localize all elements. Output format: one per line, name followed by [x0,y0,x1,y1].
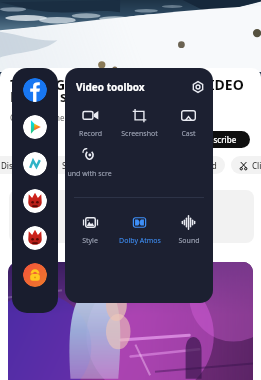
staticText: Clip [252,160,261,171]
button[interactable]: Finance [23,152,47,176]
button[interactable]: Game 2 [23,226,47,250]
staticText: THE BIG Mountain cimbing VIDEO Day 2 - s… [10,75,244,107]
staticText: Screenshot [121,129,158,139]
button[interactable]: Play Store [23,115,47,139]
staticText: Record [79,129,102,139]
button[interactable]: Cast [164,105,213,141]
button[interactable]: Download [157,156,225,174]
button[interactable] [9,190,254,243]
button[interactable]: App lock [23,263,47,287]
staticText: Share [62,160,84,171]
staticText: Video toolbox [76,80,145,94]
button[interactable]: Sound [164,212,213,248]
button[interactable]: und with scre [65,145,115,181]
button[interactable]: Screenshot [115,105,164,141]
staticText: Channel name · 1.2M views [10,112,117,123]
button[interactable]: Remix [98,156,151,174]
staticText: und with scre [67,169,112,179]
button[interactable]: Dolby Atmos [115,212,164,248]
button[interactable]: Clip [231,156,261,174]
button[interactable]: Settings [189,78,206,95]
button[interactable]: Share [41,156,92,174]
staticText: Download [178,160,217,171]
button[interactable]: Game [23,189,47,213]
staticText: Cast [181,129,196,139]
button[interactable]: Subscribe [186,131,250,148]
button[interactable]: Facebook [23,78,47,102]
staticText: Dislike [1,160,27,171]
button[interactable]: Style [65,212,115,248]
staticText: Style [82,236,98,246]
button[interactable]: Record [65,105,115,141]
staticText: Subscribe [199,134,237,145]
staticText: Dolby Atmos [119,236,161,246]
staticText: Sound [178,236,200,246]
button[interactable]: Dislike [0,156,35,174]
